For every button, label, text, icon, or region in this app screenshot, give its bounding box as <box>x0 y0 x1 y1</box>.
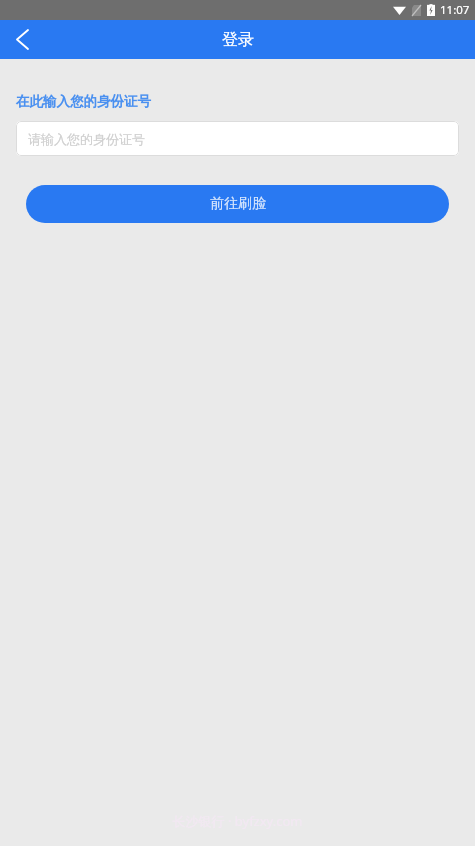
button[interactable]: Back <box>0 20 44 59</box>
button[interactable]: 请输入您的身份证号 <box>16 121 459 156</box>
staticText: 在此输入您的身份证号 <box>16 93 151 110</box>
staticText: 前往刷脸 <box>210 195 266 213</box>
button[interactable]: 前往刷脸 <box>26 185 449 223</box>
staticText: 请输入您的身份证号 <box>28 131 145 147</box>
staticText: 登录 <box>222 30 254 50</box>
staticText: 11:07 <box>440 2 470 18</box>
